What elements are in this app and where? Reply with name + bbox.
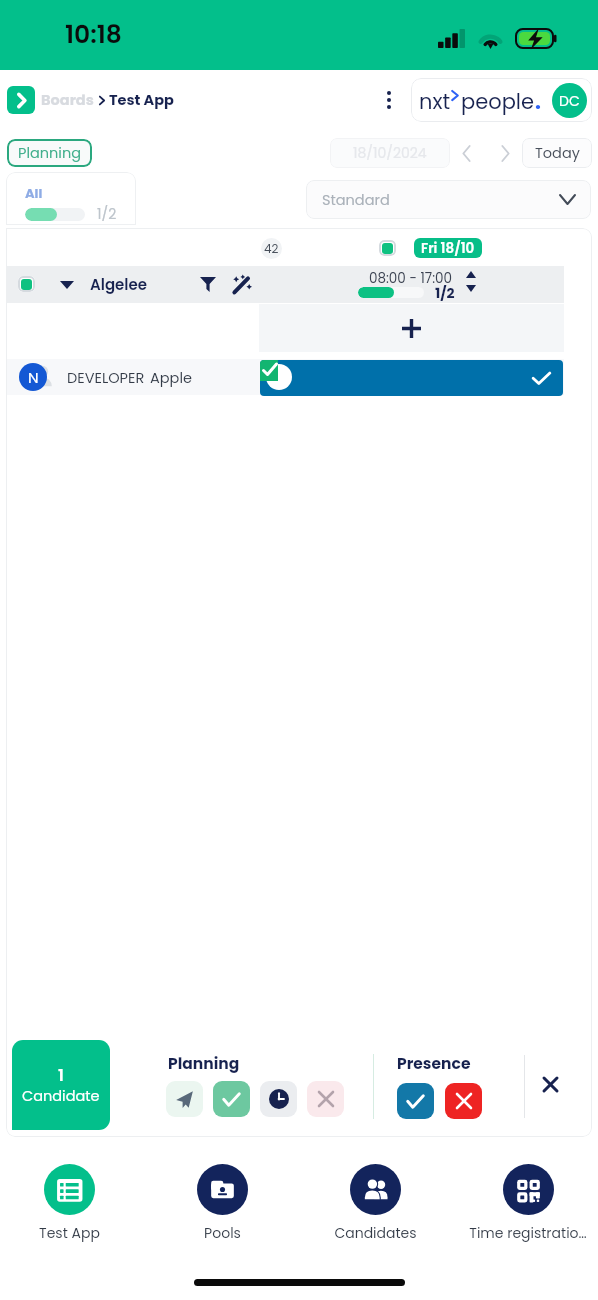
button[interactable]: Standard <box>306 180 591 219</box>
button[interactable]: Confirm <box>213 1081 250 1117</box>
button[interactable]: Select group <box>18 276 35 292</box>
staticText: Algelee <box>90 274 148 295</box>
staticText: Candidates <box>334 1223 417 1243</box>
button[interactable]: Planning <box>7 139 92 167</box>
button[interactable]: Confirm <box>397 1083 434 1119</box>
button[interactable]: Time registratio… <box>453 1164 598 1243</box>
staticText: 10:18 <box>65 17 122 52</box>
button[interactable]: nxt <box>411 78 592 122</box>
button[interactable]: Collapse group <box>60 281 74 289</box>
button[interactable]: Decline <box>307 1081 344 1117</box>
button[interactable]: Pending <box>260 1081 297 1117</box>
button[interactable]: Test App <box>0 1164 144 1243</box>
button[interactable]: Auto plan <box>232 275 252 294</box>
button[interactable]: Boards <box>41 90 94 110</box>
button[interactable]: Decline <box>445 1083 482 1119</box>
button[interactable]: Close <box>530 1064 570 1104</box>
staticText: Apple <box>150 368 192 388</box>
staticText: Test App <box>39 1223 100 1243</box>
button[interactable]: Today <box>522 138 592 168</box>
button[interactable]: Select day <box>379 240 396 256</box>
staticText: Fri 18/10 <box>421 239 475 258</box>
staticText: Planning <box>168 1053 240 1075</box>
staticText: Candidate <box>22 1086 100 1106</box>
button[interactable]: 18/10/2024 <box>330 138 450 168</box>
button[interactable] <box>260 360 563 396</box>
other: Confirm <box>407 1095 424 1108</box>
staticText: All <box>25 184 43 202</box>
staticText: Standard <box>322 190 390 210</box>
other: Decline <box>457 1094 471 1108</box>
staticText: DC <box>559 91 580 111</box>
staticText: 1/2 <box>435 283 455 303</box>
staticText: 18/10/2024 <box>353 143 427 163</box>
button[interactable]: Next day <box>491 139 519 167</box>
staticText: 1/2 <box>97 204 117 224</box>
staticText: 08:00 - 17:00 <box>369 269 452 288</box>
staticText: 42 <box>264 240 279 257</box>
staticText: Presence <box>397 1053 471 1075</box>
staticText: Planning <box>18 143 81 163</box>
button[interactable]: Add shift <box>259 304 564 352</box>
other: Decline <box>319 1092 333 1106</box>
button[interactable]: Boards <box>7 86 35 114</box>
other: Pending <box>269 1089 289 1109</box>
button[interactable]: 1 <box>12 1040 110 1130</box>
staticText: . <box>535 87 541 116</box>
staticText: DEVELOPER <box>67 368 145 388</box>
staticText: 1 <box>58 1064 64 1086</box>
button[interactable]: Send <box>166 1081 203 1117</box>
button[interactable]: More options <box>372 83 406 117</box>
staticText: Pools <box>204 1223 241 1243</box>
other: Send <box>175 1090 194 1109</box>
button[interactable]: Fri 18/10 <box>414 238 482 258</box>
other: Confirm <box>223 1093 240 1106</box>
staticText: N <box>28 367 39 388</box>
button[interactable]: Adjust count <box>466 271 476 292</box>
button[interactable]: Filter <box>200 277 216 292</box>
staticText: Today <box>535 143 580 163</box>
button[interactable]: Pools <box>147 1164 297 1243</box>
button[interactable]: Candidates <box>300 1164 450 1243</box>
button[interactable]: Previous day <box>452 139 480 167</box>
button[interactable]: All <box>6 172 136 225</box>
staticText: nxt <box>419 87 451 116</box>
staticText: Time registratio… <box>469 1223 587 1243</box>
staticText: people <box>461 87 535 116</box>
staticText: Test App <box>109 90 174 110</box>
